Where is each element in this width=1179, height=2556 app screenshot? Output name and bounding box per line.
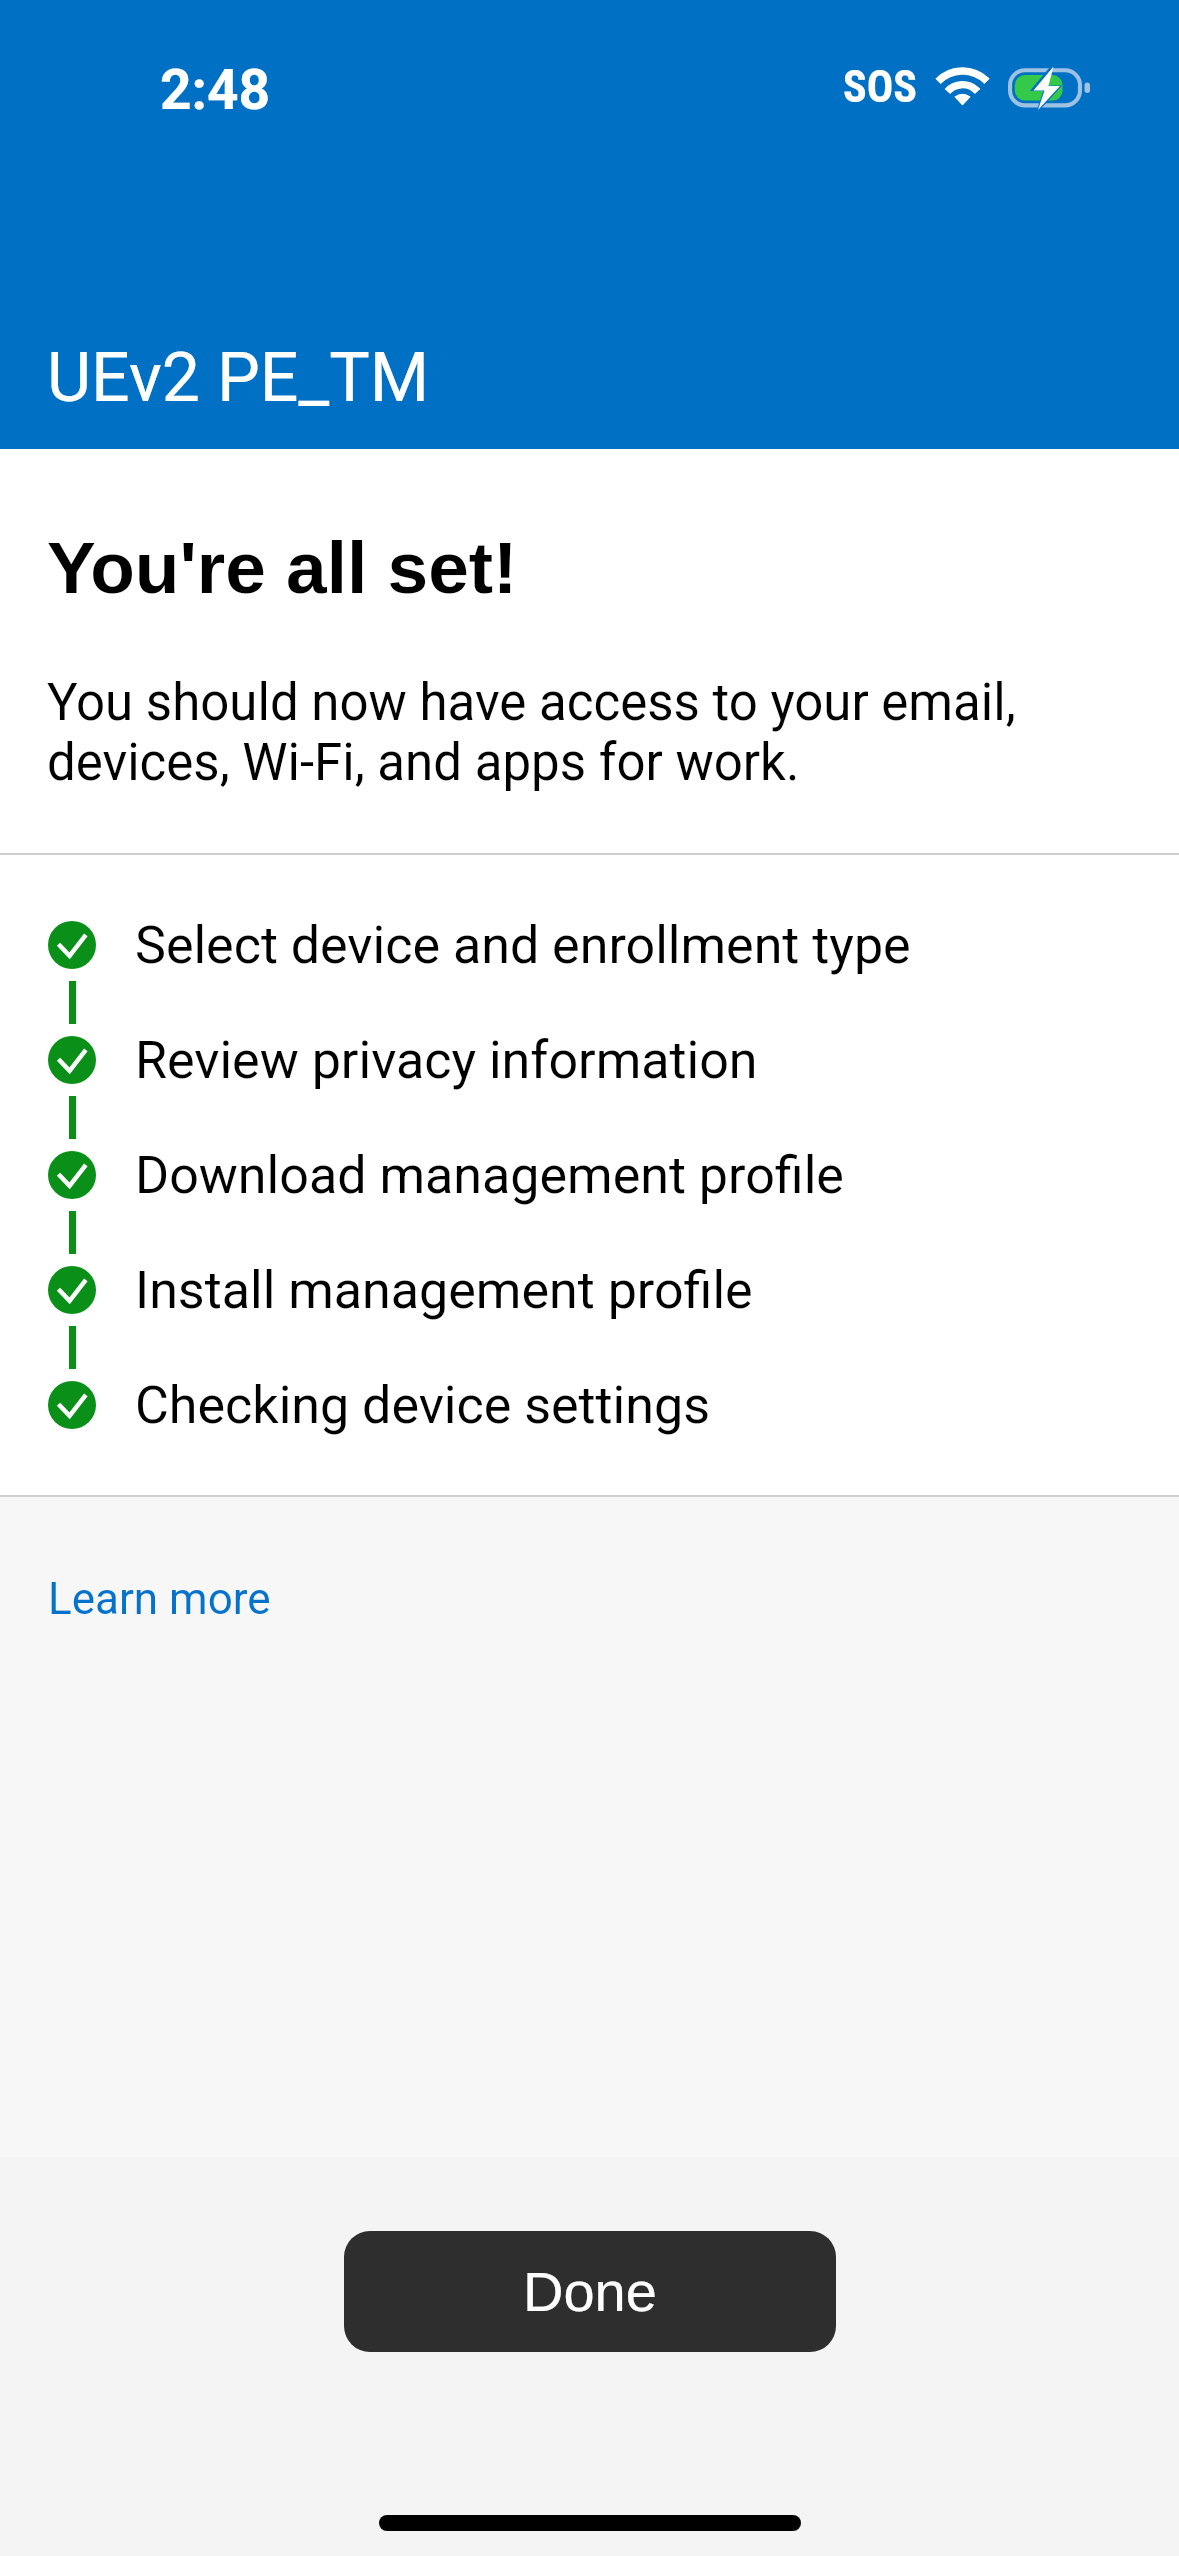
staticText: UEv2 PE_TM <box>47 338 430 418</box>
staticText: SOS <box>843 61 918 113</box>
other: Wi-Fi <box>937 67 988 105</box>
staticText: You should now have access to your email… <box>47 673 1016 792</box>
staticText: You're all set! <box>47 527 518 609</box>
staticText: 2:48 <box>160 58 271 122</box>
button[interactable]: Learn more <box>32 1561 287 1637</box>
other: Battery charging <box>1008 66 1090 111</box>
staticText: Learn more <box>48 1573 271 1625</box>
staticText: Checking device settings <box>135 1375 711 1436</box>
staticText: Download management profile <box>135 1145 844 1206</box>
staticText: Review privacy information <box>135 1030 758 1091</box>
staticText: Done <box>523 2260 657 2323</box>
button[interactable]: Done <box>344 2231 836 2352</box>
staticText: Select device and enrollment type <box>135 915 911 976</box>
staticText: Install management profile <box>135 1260 753 1321</box>
